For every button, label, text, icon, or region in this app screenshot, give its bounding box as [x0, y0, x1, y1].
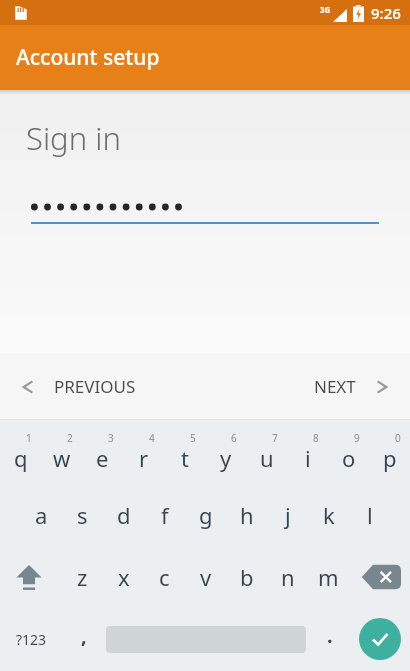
button[interactable]: g: [185, 484, 226, 546]
staticText: NEXT: [314, 375, 356, 398]
staticText: o: [342, 443, 356, 473]
staticText: m: [318, 562, 339, 592]
button[interactable]: 6: [205, 422, 246, 484]
button[interactable]: ?123: [0, 608, 62, 670]
staticText: 5: [190, 431, 196, 445]
staticText: x: [118, 562, 130, 592]
staticText: s: [77, 500, 88, 530]
staticText: a: [35, 500, 48, 530]
button[interactable]: Backspace: [354, 546, 408, 608]
staticText: t: [181, 443, 189, 473]
button[interactable]: .: [310, 608, 350, 670]
staticText: 3G: [320, 4, 331, 15]
staticText: z: [77, 562, 88, 592]
staticText: p: [383, 443, 397, 473]
button[interactable]: x: [103, 546, 144, 608]
staticText: 8: [313, 431, 319, 445]
staticText: b: [240, 562, 254, 592]
staticText: h: [240, 500, 254, 530]
staticText: Account setup: [16, 43, 160, 72]
button[interactable]: z: [62, 546, 103, 608]
staticText: ,: [81, 622, 87, 649]
staticText: d: [117, 500, 131, 530]
staticText: r: [139, 443, 149, 473]
staticText: i: [305, 443, 311, 473]
staticText: Sign in: [26, 117, 121, 159]
staticText: 6: [231, 431, 237, 445]
staticText: w: [53, 443, 71, 473]
button[interactable]: 5: [164, 422, 205, 484]
staticText: f: [161, 500, 169, 530]
button[interactable]: c: [144, 546, 185, 608]
button[interactable]: ,: [62, 608, 106, 670]
staticText: n: [281, 562, 295, 592]
staticText: c: [159, 562, 170, 592]
button[interactable]: 2: [41, 422, 82, 484]
staticText: 7: [272, 431, 278, 445]
button[interactable]: j: [267, 484, 308, 546]
button[interactable]: l: [349, 484, 390, 546]
staticText: y: [220, 443, 232, 473]
button[interactable]: 9: [328, 422, 369, 484]
staticText: 9:26: [371, 3, 401, 23]
button[interactable]: 3: [82, 422, 123, 484]
button[interactable]: 1: [0, 422, 41, 484]
button[interactable]: 8: [287, 422, 328, 484]
staticText: j: [285, 500, 291, 530]
staticText: .: [327, 622, 333, 649]
button[interactable]: d: [103, 484, 144, 546]
button[interactable]: v: [185, 546, 226, 608]
button[interactable]: Done: [359, 618, 401, 660]
button[interactable]: k: [308, 484, 349, 546]
button[interactable]: 0: [369, 422, 410, 484]
button[interactable]: h: [226, 484, 267, 546]
staticText: l: [367, 500, 373, 530]
staticText: v: [200, 562, 212, 592]
button[interactable]: PREVIOUS: [18, 375, 136, 398]
staticText: k: [323, 500, 335, 530]
button[interactable]: [31, 196, 379, 218]
button[interactable]: 4: [123, 422, 164, 484]
staticText: u: [260, 443, 274, 473]
staticText: PREVIOUS: [54, 375, 136, 398]
staticText: 4: [149, 431, 155, 445]
staticText: 9: [354, 431, 360, 445]
staticText: q: [14, 443, 28, 473]
staticText: ?123: [16, 630, 47, 649]
button[interactable]: n: [267, 546, 308, 608]
button[interactable]: a: [21, 484, 62, 546]
staticText: 1: [26, 431, 32, 445]
button[interactable]: 7: [246, 422, 287, 484]
staticText: 0: [395, 431, 401, 445]
button[interactable]: f: [144, 484, 185, 546]
staticText: e: [96, 443, 109, 473]
button[interactable]: NEXT: [314, 375, 392, 398]
staticText: 3: [108, 431, 114, 445]
button[interactable]: Shift: [2, 546, 56, 608]
button[interactable]: s: [62, 484, 103, 546]
button[interactable]: b: [226, 546, 267, 608]
staticText: g: [199, 500, 213, 530]
button[interactable]: m: [308, 546, 349, 608]
staticText: 2: [67, 431, 73, 445]
